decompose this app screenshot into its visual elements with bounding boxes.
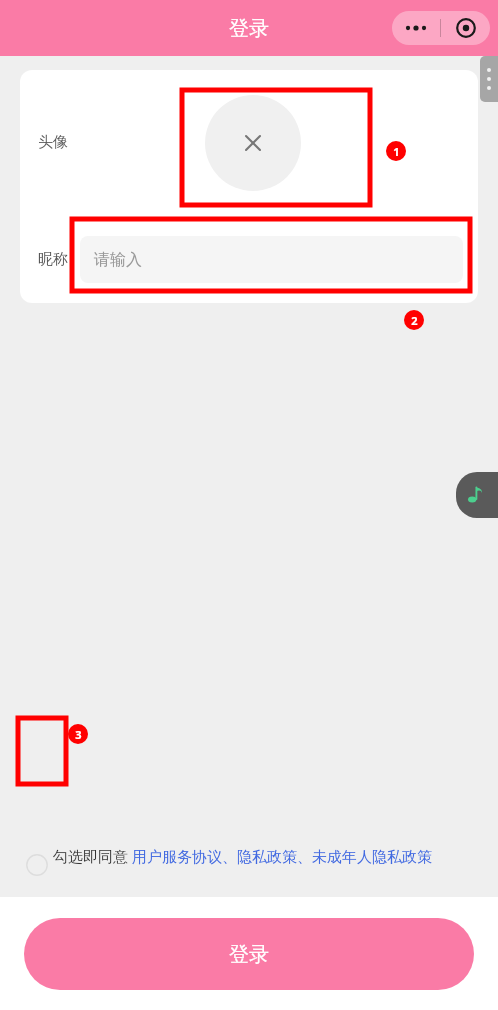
staticText: 昵称 (38, 250, 68, 269)
staticText: 登录 (229, 942, 269, 967)
button[interactable]: Debug panel (480, 56, 498, 102)
button[interactable]: 登录 (24, 918, 474, 990)
staticText: 登录 (229, 16, 269, 41)
button[interactable]: More (392, 23, 440, 33)
button[interactable]: 头像 (20, 70, 478, 215)
button[interactable]: 请输入 (80, 236, 463, 283)
staticText: 3 (75, 727, 82, 742)
staticText: 请输入 (94, 250, 142, 270)
staticText: 勾选即同意 用户服务协议、隐私政策、未成年人隐私政策 (53, 846, 432, 866)
button[interactable]: Agree checkbox (23, 851, 51, 879)
button[interactable]: Music (456, 472, 498, 518)
staticText: 头像 (38, 133, 68, 152)
staticText: 1 (393, 144, 400, 159)
staticText: 2 (411, 313, 418, 328)
button[interactable]: Close (441, 18, 490, 38)
